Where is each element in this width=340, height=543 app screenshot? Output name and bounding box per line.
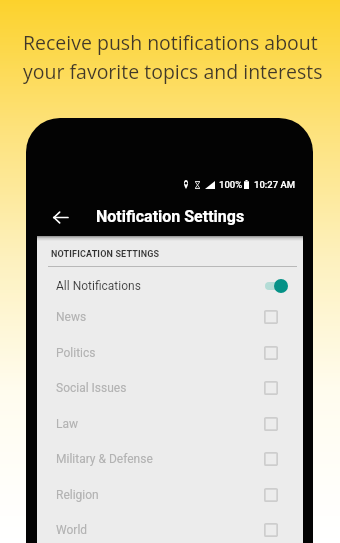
staticText: 10:27 AM <box>254 179 296 190</box>
button[interactable]: Religion <box>37 477 303 513</box>
staticText: Social Issues <box>56 381 127 395</box>
staticText: Politics <box>56 346 96 360</box>
button[interactable]: All Notifications <box>37 271 303 300</box>
staticText: 100% <box>219 179 243 190</box>
staticText: Religion <box>56 488 99 502</box>
button[interactable]: Back <box>41 198 79 236</box>
staticText: Law <box>56 417 79 431</box>
button[interactable]: Military & Defense <box>37 441 303 477</box>
staticText: News <box>56 310 87 324</box>
staticText: Receive push notifications about <box>23 29 318 56</box>
button[interactable]: World <box>37 512 303 543</box>
staticText: Notification Settings <box>96 207 245 226</box>
staticText: your favorite topics and interests <box>23 58 323 85</box>
staticText: World <box>56 523 88 537</box>
button[interactable]: Social Issues <box>37 370 303 406</box>
staticText: NOTIFICATION SETTINGS <box>51 249 160 260</box>
button[interactable]: Politics <box>37 335 303 371</box>
button[interactable]: News <box>37 299 303 335</box>
staticText: Military & Defense <box>56 452 153 466</box>
button[interactable]: Law <box>37 406 303 442</box>
staticText: All Notifications <box>56 279 141 293</box>
